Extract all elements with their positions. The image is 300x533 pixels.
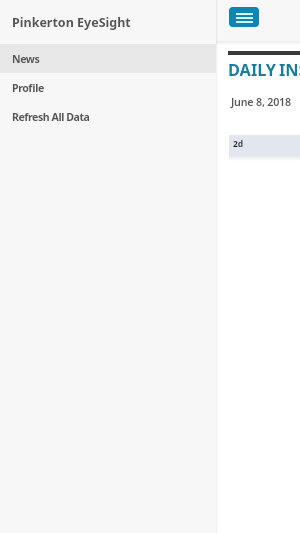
button[interactable]: News [0,44,216,73]
staticText: Pinkerton EyeSight [12,14,131,31]
staticText: June 8, 2018 [231,95,291,110]
button[interactable]: 2d [229,135,300,156]
staticText: Refresh All Data [12,110,90,124]
staticText: 2d [233,138,244,150]
staticText: DAILY [228,59,277,81]
button[interactable]: Refresh All Data [0,102,216,131]
button[interactable]: Open navigation menu [229,7,259,27]
staticText: News [12,52,40,66]
staticText: Profile [12,81,44,95]
staticText: INSIGHT [279,59,300,81]
button[interactable]: Profile [0,73,216,102]
